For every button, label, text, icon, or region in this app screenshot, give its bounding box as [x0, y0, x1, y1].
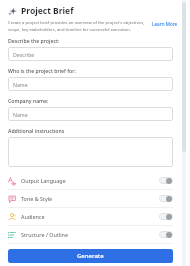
button[interactable]: Output Language [0, 172, 181, 189]
staticText: Tone & Style [21, 195, 159, 202]
button[interactable]: Structure / Outline [0, 226, 181, 243]
button[interactable]: Describe [8, 47, 173, 61]
staticText: Generate [77, 252, 104, 260]
staticText: Who is the project brief for: [8, 67, 76, 74]
staticText: Project Brief [21, 5, 74, 17]
staticText: Describe the project: [8, 37, 60, 44]
button[interactable]: Name [8, 107, 173, 121]
other: Toggle [159, 213, 173, 220]
staticText: Structure / Outline [21, 231, 159, 238]
staticText: Additional instructions [8, 127, 65, 134]
staticText: Create a project brief provides an overv… [8, 20, 147, 32]
button[interactable]: Tone & Style [0, 190, 181, 207]
button[interactable]: Name [8, 77, 173, 91]
button[interactable] [8, 137, 173, 167]
staticText: Describe [13, 51, 35, 58]
staticText: Audience [21, 213, 159, 220]
staticText: Company name: [8, 97, 49, 104]
button[interactable]: Generate [8, 249, 173, 263]
button[interactable]: Learn More [151, 20, 179, 28]
staticText: Learn More [152, 21, 178, 27]
staticText: Name [13, 111, 28, 118]
other: Toggle [159, 177, 173, 184]
other: Toggle [159, 231, 173, 238]
button[interactable]: Audience [0, 208, 181, 225]
staticText: Output Language [21, 177, 159, 184]
staticText: Name [13, 81, 28, 88]
other: Toggle [159, 195, 173, 202]
